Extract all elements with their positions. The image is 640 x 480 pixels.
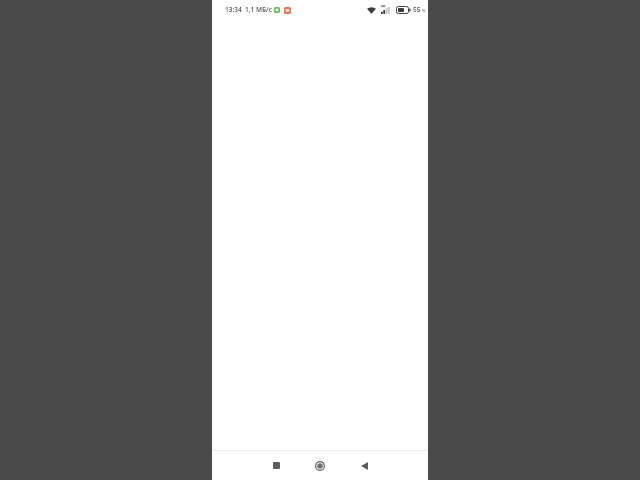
button[interactable] — [254, 451, 298, 480]
staticText: % — [422, 8, 426, 13]
staticText: 13:34 — [225, 5, 242, 14]
staticText: 55 — [413, 5, 421, 14]
button[interactable] — [298, 451, 342, 480]
button[interactable] — [342, 451, 386, 480]
staticText: 1,1 МБ/с — [245, 5, 273, 14]
